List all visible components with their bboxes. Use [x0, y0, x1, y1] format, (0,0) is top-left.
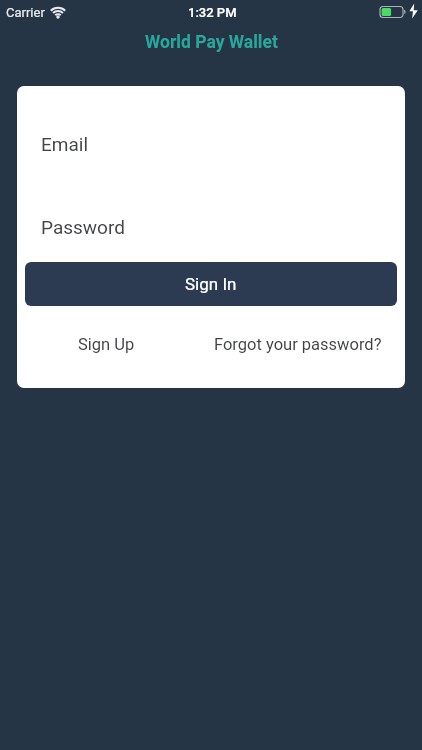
staticText: Email	[41, 133, 89, 155]
staticText: Password	[41, 216, 125, 238]
staticText: Sign In	[185, 274, 237, 294]
button[interactable]: Password	[17, 197, 405, 257]
button[interactable]: Sign In	[25, 262, 397, 306]
button[interactable]: Forgot your password?	[207, 328, 389, 360]
staticText: World Pay Wallet	[145, 32, 278, 53]
staticText: Forgot your password?	[214, 335, 382, 354]
staticText: Sign Up	[78, 335, 135, 354]
button[interactable]: Email	[17, 114, 405, 174]
staticText: Carrier	[6, 5, 45, 20]
button[interactable]: Sign Up	[59, 328, 154, 360]
staticText: 1:32 PM	[188, 5, 237, 20]
